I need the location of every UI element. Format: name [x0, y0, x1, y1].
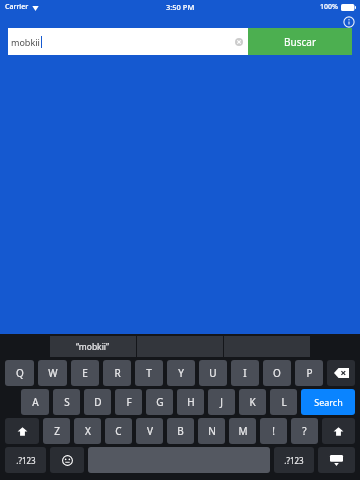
button[interactable]: Hide keyboard — [318, 447, 355, 473]
button[interactable]: Shift — [322, 418, 355, 444]
button[interactable]: M — [229, 418, 256, 444]
staticText: “mobkii” — [76, 341, 110, 353]
button[interactable]: R — [103, 360, 131, 386]
button[interactable]: F — [115, 389, 142, 415]
staticText: E — [82, 366, 88, 380]
button[interactable]: E — [71, 360, 99, 386]
button[interactable]: N — [198, 418, 225, 444]
button[interactable]: C — [105, 418, 132, 444]
staticText: R — [114, 366, 121, 380]
staticText: X — [85, 424, 91, 438]
staticText: N — [208, 424, 216, 438]
staticText: S — [64, 395, 70, 409]
button[interactable]: A — [21, 389, 49, 415]
staticText: L — [281, 395, 287, 409]
staticText: C — [115, 424, 122, 438]
staticText: T — [146, 366, 152, 380]
button[interactable]: .?123 — [274, 447, 314, 473]
button[interactable]: U — [199, 360, 227, 386]
staticText: .?123 — [284, 455, 304, 466]
staticText: Carrier — [5, 2, 29, 12]
staticText: G — [156, 395, 164, 409]
button[interactable]: D — [84, 389, 111, 415]
button[interactable]: H — [177, 389, 204, 415]
staticText: M — [238, 424, 248, 438]
button[interactable]: J — [208, 389, 235, 415]
button[interactable]: ? — [291, 418, 318, 444]
staticText: V — [147, 424, 153, 438]
staticText: O — [273, 366, 281, 380]
staticText: W — [48, 366, 58, 380]
button[interactable]: Clear text — [233, 36, 245, 48]
button[interactable]: Z — [43, 418, 70, 444]
button[interactable]: Info — [342, 15, 355, 28]
button[interactable]: P — [295, 360, 323, 386]
staticText: J — [220, 395, 223, 409]
button[interactable]: O — [263, 360, 291, 386]
button[interactable]: Shift — [5, 418, 39, 444]
staticText: ! — [272, 424, 275, 438]
button[interactable]: V — [136, 418, 163, 444]
button[interactable]: Emoji — [50, 447, 84, 473]
button[interactable]: Buscar — [248, 28, 352, 55]
staticText: B — [177, 424, 184, 438]
button[interactable]: I — [231, 360, 259, 386]
button[interactable]: T — [135, 360, 163, 386]
staticText: I — [243, 366, 247, 380]
button[interactable]: ! — [260, 418, 287, 444]
button[interactable]: K — [239, 389, 266, 415]
staticText: .?123 — [16, 455, 36, 466]
staticText: U — [209, 366, 217, 380]
button[interactable]: G — [146, 389, 173, 415]
button[interactable]: L — [270, 389, 297, 415]
staticText: A — [32, 395, 39, 409]
staticText: 100% — [320, 2, 338, 12]
staticText: K — [249, 395, 256, 409]
button[interactable]: Search — [301, 389, 355, 415]
button[interactable]: W — [38, 360, 67, 386]
staticText: Y — [178, 366, 184, 380]
staticText: Buscar — [284, 35, 317, 49]
button[interactable]: Q — [5, 360, 34, 386]
button[interactable]: “mobkii” — [50, 336, 136, 357]
staticText: Search — [314, 396, 343, 408]
button[interactable]: X — [74, 418, 101, 444]
staticText: 3:50 PM — [166, 2, 195, 12]
staticText: Z — [54, 424, 60, 438]
staticText: D — [94, 395, 102, 409]
button[interactable]: B — [167, 418, 194, 444]
button[interactable]: .?123 — [5, 447, 46, 473]
button[interactable]: mobkii — [8, 28, 248, 55]
button[interactable]: Backspace — [327, 360, 355, 386]
button[interactable]: S — [53, 389, 80, 415]
staticText: mobkii — [11, 36, 40, 48]
staticText: Q — [16, 366, 24, 380]
button[interactable]: Y — [167, 360, 195, 386]
staticText: H — [187, 395, 195, 409]
staticText: F — [126, 395, 132, 409]
staticText: ? — [302, 424, 307, 438]
staticText: P — [306, 366, 313, 380]
